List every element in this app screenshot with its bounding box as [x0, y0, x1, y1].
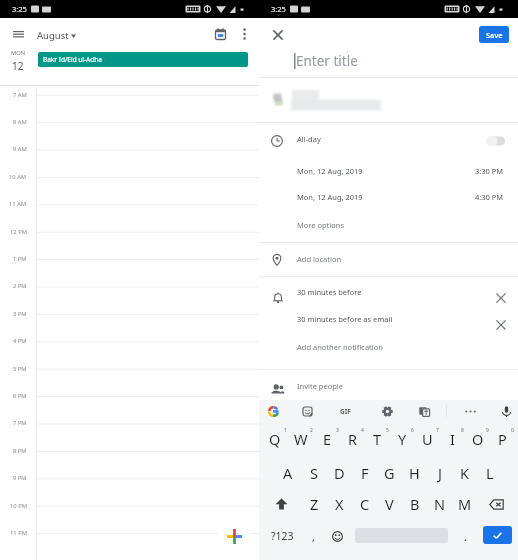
button[interactable]: More options: [259, 212, 518, 238]
staticText: I: [450, 429, 455, 449]
button[interactable]: R: [340, 422, 365, 456]
button[interactable]: ?123: [268, 518, 296, 554]
button[interactable]: Create new event: [218, 520, 250, 552]
button[interactable]: A: [275, 456, 301, 490]
staticText: M: [458, 494, 472, 514]
button[interactable]: Add another notification: [259, 332, 518, 359]
button[interactable]: Add location: [259, 243, 518, 276]
button[interactable]: Z: [301, 487, 327, 521]
button[interactable]: More options: [234, 24, 254, 44]
button[interactable]: Save: [479, 26, 509, 43]
staticText: C: [360, 494, 370, 514]
button[interactable]: .: [457, 518, 473, 554]
button[interactable]: F: [352, 456, 377, 490]
button[interactable]: G: [377, 456, 402, 490]
button[interactable]: Mon, 12 Aug, 2019: [259, 160, 518, 186]
button[interactable]: E: [314, 422, 340, 456]
staticText: N: [434, 494, 446, 514]
button[interactable]: X: [327, 487, 352, 521]
button[interactable]: S: [301, 456, 327, 490]
button[interactable]: H: [402, 456, 427, 490]
staticText: Enter title: [296, 52, 358, 70]
staticText: Save: [486, 30, 503, 40]
staticText: A: [283, 463, 293, 483]
button[interactable]: L: [477, 456, 502, 490]
staticText: D: [334, 463, 345, 483]
staticText: 3 PM: [13, 310, 27, 318]
staticText: Y: [398, 429, 407, 449]
button[interactable]: Done: [483, 526, 512, 544]
button[interactable]: Remove email notification: [491, 315, 511, 335]
button[interactable]: Close: [266, 23, 289, 46]
staticText: 11 PM: [10, 529, 27, 537]
button[interactable]: Q: [262, 422, 288, 456]
staticText: ,: [312, 529, 315, 544]
button[interactable]: U: [415, 422, 440, 456]
staticText: V: [385, 494, 394, 514]
button[interactable]: GIF: [334, 400, 356, 422]
button[interactable]: P: [490, 422, 515, 456]
staticText: F: [361, 463, 369, 483]
staticText: 9: [486, 427, 489, 434]
button[interactable]: Emoji: [327, 518, 347, 554]
button[interactable]: ,: [303, 518, 323, 554]
button[interactable]: O: [465, 422, 490, 456]
button[interactable]: Google: [262, 400, 284, 422]
staticText: L: [486, 463, 494, 483]
button[interactable]: B: [402, 487, 427, 521]
button[interactable]: J: [427, 456, 452, 490]
button[interactable]: Translate: [413, 400, 435, 422]
staticText: J: [438, 463, 442, 483]
button[interactable]: Invite people: [259, 370, 518, 399]
button[interactable]: Backspace: [477, 487, 515, 521]
button[interactable]: V: [377, 487, 402, 521]
button[interactable]: 30 minutes before as email: [259, 305, 518, 332]
button[interactable]: [259, 78, 518, 122]
staticText: W: [294, 429, 308, 449]
staticText: 5: [386, 427, 389, 434]
button[interactable]: Settings: [376, 400, 398, 422]
button[interactable]: All-day: [259, 123, 518, 154]
button[interactable]: D: [327, 456, 352, 490]
button[interactable]: Go to today: [209, 23, 231, 45]
staticText: 3:30 PM: [475, 166, 504, 176]
button[interactable]: I: [440, 422, 465, 456]
button[interactable]: C: [352, 487, 377, 521]
staticText: 10 PM: [10, 502, 27, 510]
staticText: .: [464, 529, 467, 544]
button[interactable]: Open navigation drawer: [6, 21, 31, 46]
button[interactable]: Stickers: [296, 400, 318, 422]
button[interactable]: Shift: [262, 487, 301, 521]
button[interactable]: Remove notification: [491, 288, 511, 308]
button[interactable]: Bakr Id/Eid ul-Adha: [38, 52, 248, 67]
button[interactable]: August: [34, 27, 79, 44]
button[interactable]: More options: [459, 400, 481, 422]
button[interactable]: 30 minutes before: [259, 277, 518, 305]
button[interactable]: Enter title: [259, 46, 518, 75]
button[interactable]: T: [365, 422, 390, 456]
button[interactable]: K: [452, 456, 477, 490]
button[interactable]: All-day toggle: [486, 135, 507, 147]
staticText: 8 AM: [13, 118, 27, 126]
staticText: More options: [297, 220, 345, 230]
staticText: Bakr Id/Eid ul-Adha: [43, 55, 102, 64]
button[interactable]: Mon, 12 Aug, 2019: [259, 186, 518, 212]
staticText: R: [348, 429, 358, 449]
button[interactable]: Voice input: [495, 400, 517, 422]
staticText: MON: [11, 49, 26, 57]
staticText: E: [323, 429, 332, 449]
staticText: 7 AM: [13, 91, 27, 99]
button[interactable]: Y: [390, 422, 415, 456]
staticText: 11 AM: [9, 200, 27, 208]
staticText: 0: [511, 427, 514, 434]
staticText: B: [410, 494, 420, 514]
staticText: X: [335, 494, 344, 514]
staticText: K: [460, 463, 469, 483]
staticText: Add location: [297, 254, 342, 264]
staticText: Invite people: [297, 381, 343, 391]
button[interactable]: M: [452, 487, 477, 521]
button[interactable]: W: [288, 422, 314, 456]
staticText: 1 PM: [13, 255, 27, 263]
button[interactable]: N: [427, 487, 452, 521]
